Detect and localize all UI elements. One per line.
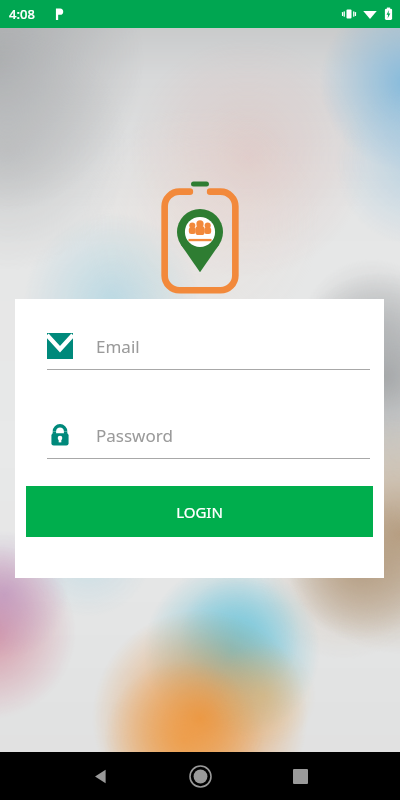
other: Email — [47, 333, 73, 359]
staticText: LOGIN — [176, 502, 223, 522]
staticText: 4:08 — [9, 5, 35, 23]
button[interactable]: LOGIN — [26, 486, 373, 537]
staticText: Email — [96, 335, 140, 358]
staticText: Password — [96, 424, 173, 447]
other: Password — [47, 422, 73, 448]
button[interactable]: Recent apps — [280, 756, 320, 796]
button[interactable]: Password — [15, 412, 384, 459]
button[interactable]: Email — [15, 323, 384, 370]
button[interactable]: Home — [180, 756, 220, 796]
button[interactable]: Back — [80, 756, 120, 796]
